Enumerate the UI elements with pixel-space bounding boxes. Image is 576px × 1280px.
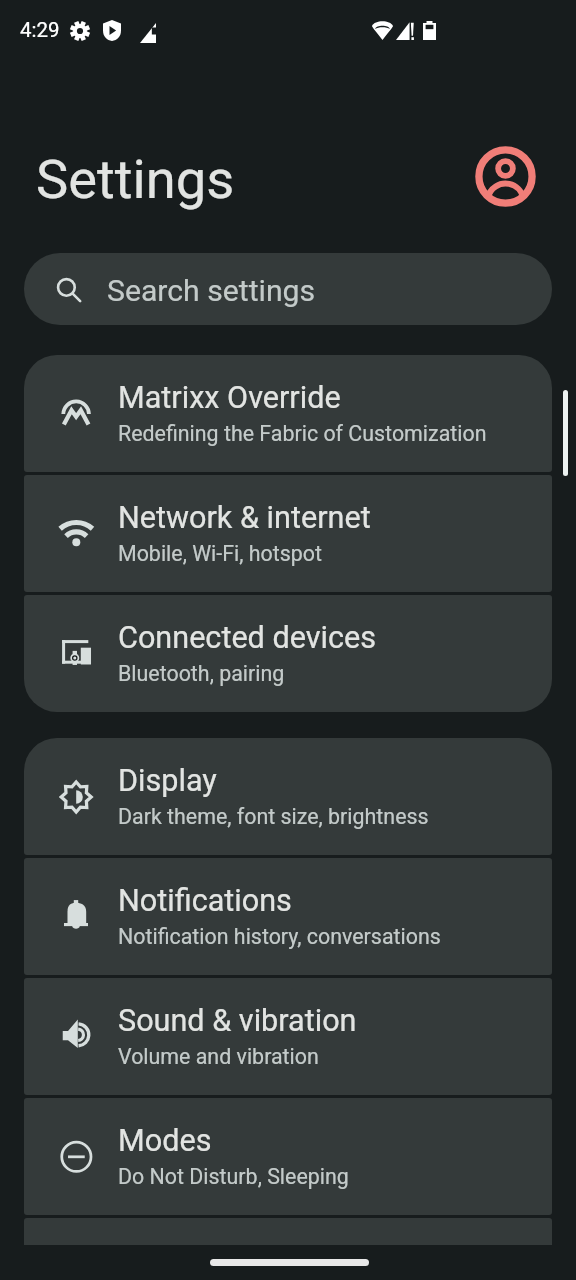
button[interactable]: Notifications (24, 858, 552, 975)
button[interactable]: Connected devices (24, 595, 552, 712)
staticText: Volume and vibration (118, 1044, 319, 1069)
staticText: Network & internet (118, 500, 371, 536)
button[interactable]: Matrixx Override (24, 355, 552, 472)
staticText: Search settings (107, 273, 316, 308)
staticText: Settings (36, 148, 235, 212)
staticText: Display (118, 763, 217, 799)
button[interactable]: Sound & vibration (24, 978, 552, 1095)
staticText: 4:29 (20, 18, 60, 42)
staticText: Sound & vibration (118, 1003, 357, 1039)
staticText: Modes (118, 1123, 212, 1159)
staticText: Do Not Disturb, Sleeping (118, 1164, 349, 1189)
staticText: Bluetooth, pairing (118, 661, 285, 686)
staticText: Dark theme, font size, brightness (118, 804, 429, 829)
staticText: Notifications (118, 883, 292, 919)
staticText: Notification history, conversations (118, 924, 441, 949)
staticText: Redefining the Fabric of Customization (118, 421, 487, 446)
staticText: Mobile, Wi-Fi, hotspot (118, 541, 323, 566)
button[interactable]: Network & internet (24, 475, 552, 592)
staticText: Matrixx Override (118, 380, 341, 416)
button[interactable]: Display (24, 738, 552, 855)
button[interactable]: Modes (24, 1098, 552, 1215)
button[interactable]: Search settings (24, 253, 552, 325)
staticText: Connected devices (118, 620, 377, 656)
button[interactable]: Account (469, 140, 541, 212)
